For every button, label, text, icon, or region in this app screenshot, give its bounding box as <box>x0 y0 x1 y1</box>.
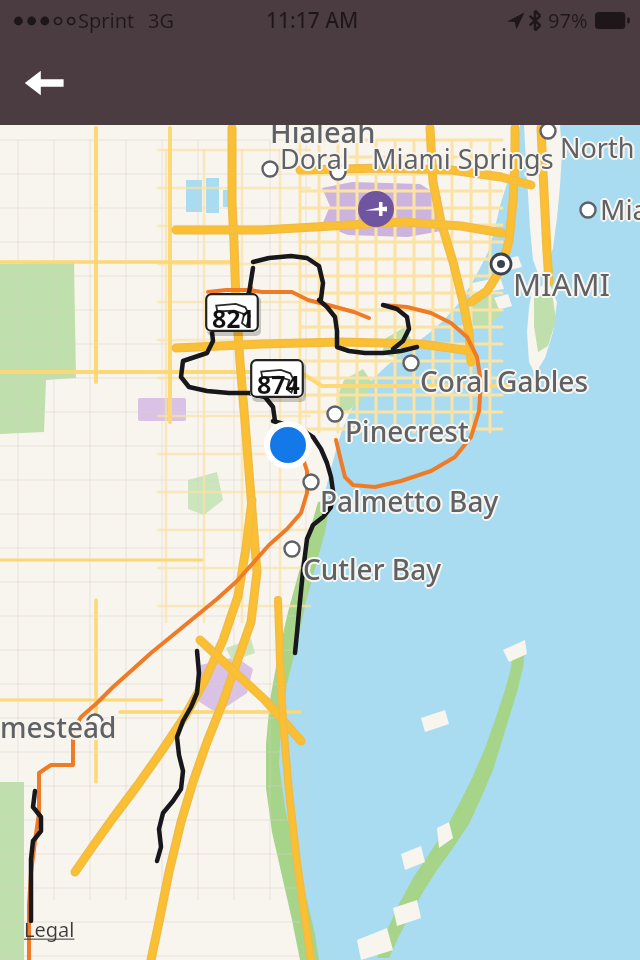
staticText: Hialeah <box>270 110 376 149</box>
staticText: Hialeah <box>271 113 377 152</box>
staticText: mestead <box>0 707 116 745</box>
staticText: MIAMI <box>512 264 610 306</box>
staticText: MIAMI <box>514 262 612 304</box>
staticText: Miami Springs <box>372 140 554 177</box>
staticText: Miami Springs <box>371 139 553 176</box>
staticText: Pinecrest <box>345 414 469 452</box>
staticText: Cutler Bay <box>302 551 440 589</box>
staticText: Miami Springs <box>372 138 554 175</box>
staticText: Pinecrest <box>343 412 467 450</box>
staticText: Coral Gables <box>420 362 589 400</box>
staticText: Palmetto Bay <box>320 480 499 518</box>
staticText: Cutler Bay <box>303 550 441 588</box>
staticText: Mia <box>600 190 640 228</box>
staticText: Cutler Bay <box>303 552 441 590</box>
staticText: Palmetto Bay <box>319 481 498 519</box>
staticText: Mia <box>599 189 640 227</box>
staticText: Mia <box>601 191 640 229</box>
staticText: 3G <box>148 7 174 34</box>
staticText: Cutler Bay <box>302 549 440 587</box>
staticText: Palmetto Bay <box>320 484 499 522</box>
staticText: Miami Springs <box>373 141 555 178</box>
staticText: Miami Springs <box>374 140 556 177</box>
staticText: Doral <box>282 140 351 177</box>
staticText: Pinecrest <box>344 413 468 451</box>
staticText: MIAMI <box>512 262 610 304</box>
staticText: 11:17 AM <box>266 6 359 35</box>
staticText: Mia <box>600 192 640 230</box>
staticText: mestead <box>1 707 118 745</box>
staticText: MIAMI <box>511 263 609 305</box>
staticText: MIAMI <box>515 263 613 305</box>
staticText: Coral Gables <box>421 361 590 399</box>
staticText: North B <box>561 128 640 165</box>
staticText: Miami Springs <box>371 141 553 178</box>
staticText: Cutler Bay <box>301 550 439 588</box>
staticText: North B <box>560 129 640 166</box>
staticText: Miami Springs <box>373 139 555 176</box>
staticText: 97% <box>548 7 588 34</box>
staticText: Mia <box>602 190 640 228</box>
staticText: North B <box>558 129 640 166</box>
staticText: Palmetto Bay <box>319 483 498 521</box>
staticText: Palmetto Bay <box>320 482 499 520</box>
staticText: North B <box>562 129 640 166</box>
staticText: MIAMI <box>513 265 611 307</box>
staticText: Palmetto Bay <box>322 482 501 520</box>
staticText: North B <box>559 128 640 165</box>
button[interactable]: Legal <box>24 916 75 943</box>
staticText: mestead <box>2 708 119 746</box>
staticText: MIAMI <box>513 263 611 305</box>
staticText: Mia <box>598 190 640 228</box>
staticText: Mia <box>599 191 640 229</box>
staticText: Pinecrest <box>346 413 470 451</box>
staticText: Pinecrest <box>345 410 469 448</box>
staticText: Coral Gables <box>422 362 591 400</box>
staticText: MIAMI <box>513 261 611 303</box>
staticText: mestead <box>0 706 117 744</box>
staticText: North B <box>560 131 640 168</box>
staticText: Palmetto Bay <box>321 483 500 521</box>
staticText: Doral <box>281 141 350 178</box>
staticText: North B <box>560 127 640 164</box>
staticText: Doral <box>280 138 349 175</box>
staticText: Hialeah <box>272 112 378 151</box>
staticText: Legal <box>24 916 75 943</box>
staticText: 821 <box>212 301 255 335</box>
staticText: Cutler Bay <box>305 550 443 588</box>
staticText: Pinecrest <box>346 411 470 449</box>
staticText: Mia <box>601 189 640 227</box>
staticText: Hialeah <box>271 111 377 150</box>
staticText: Doral <box>279 141 348 178</box>
staticText: 874 <box>257 367 300 401</box>
staticText: Hialeah <box>270 114 376 153</box>
staticText: mestead <box>0 708 117 746</box>
staticText: Hialeah <box>268 112 374 151</box>
staticText: Coral Gables <box>418 362 587 400</box>
staticText: mestead <box>1 709 118 747</box>
staticText: Cutler Bay <box>304 551 442 589</box>
staticText: Doral <box>281 139 350 176</box>
staticText: Doral <box>280 140 349 177</box>
staticText: Hialeah <box>269 113 375 152</box>
staticText: Sprint <box>78 7 135 34</box>
staticText: Miami Springs <box>372 142 554 179</box>
staticText: Doral <box>279 139 348 176</box>
staticText: mestead <box>0 709 116 747</box>
staticText: Coral Gables <box>421 363 590 401</box>
staticText: Palmetto Bay <box>321 481 500 519</box>
staticText: Coral Gables <box>419 363 588 401</box>
staticText: mestead <box>0 708 115 746</box>
staticText: Cutler Bay <box>303 548 441 586</box>
button[interactable]: Back <box>8 52 80 114</box>
staticText: Coral Gables <box>419 361 588 399</box>
staticText: Hialeah <box>270 112 376 151</box>
staticText: North B <box>561 130 640 167</box>
staticText: Miami Springs <box>370 140 552 177</box>
staticText: MIAMI <box>514 264 612 306</box>
staticText: Palmetto Bay <box>318 482 497 520</box>
staticText: Pinecrest <box>347 412 471 450</box>
staticText: Mia <box>600 188 640 226</box>
staticText: Doral <box>280 142 349 179</box>
staticText: Coral Gables <box>420 360 589 398</box>
